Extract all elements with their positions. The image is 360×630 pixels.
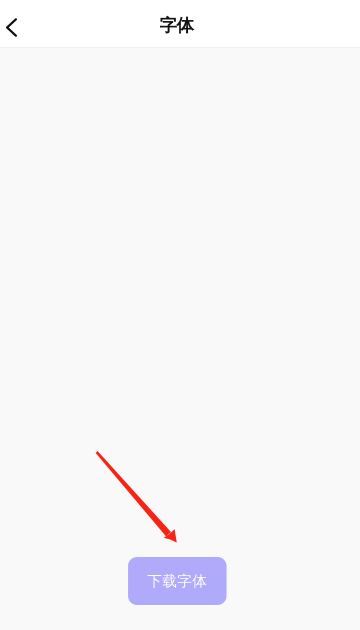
staticText: 字体 — [159, 15, 193, 36]
button[interactable]: Back — [0, 0, 33, 47]
staticText: 下载字体 — [147, 572, 207, 590]
button[interactable]: 下载字体 — [128, 557, 227, 605]
